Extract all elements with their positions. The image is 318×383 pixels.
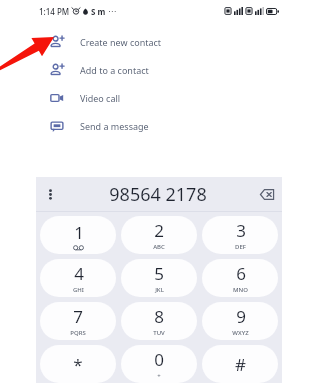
staticText: Create new contact xyxy=(80,36,162,48)
button[interactable]: Backspace xyxy=(257,184,277,204)
staticText: MNO xyxy=(233,286,248,294)
staticText: + xyxy=(157,372,161,380)
staticText: Send a message xyxy=(80,120,149,132)
staticText: 1:14 PM xyxy=(39,6,70,17)
button[interactable]: 8 xyxy=(121,302,197,340)
staticText: Add to a contact xyxy=(80,64,149,76)
button[interactable]: Add to a contact xyxy=(36,56,282,84)
staticText: 1 xyxy=(74,221,84,244)
staticText: 6 xyxy=(236,262,246,285)
staticText: 4 xyxy=(74,262,84,285)
staticText: DEF xyxy=(235,243,246,251)
staticText: GHI xyxy=(73,286,84,294)
staticText: 2 xyxy=(154,219,164,242)
button[interactable]: 5 xyxy=(121,259,197,297)
staticText: 5 xyxy=(154,262,164,285)
staticText: ABC xyxy=(153,243,165,251)
staticText: Video call xyxy=(80,92,121,104)
button[interactable]: 9 xyxy=(202,302,278,340)
staticText: # xyxy=(235,353,246,376)
staticText: 7 xyxy=(73,305,83,328)
staticText: 0 xyxy=(154,348,164,371)
staticText: 8 xyxy=(154,305,164,328)
button[interactable]: Send a message xyxy=(36,112,282,140)
button[interactable]: More options xyxy=(41,185,59,203)
button[interactable]: # xyxy=(202,345,278,383)
button[interactable]: 1 xyxy=(40,216,116,254)
staticText: 9 xyxy=(236,305,246,328)
staticText: ⋯ xyxy=(108,7,116,16)
staticText: S m xyxy=(91,6,106,17)
button[interactable]: 6 xyxy=(202,259,278,297)
staticText: 98564 2178 xyxy=(109,182,207,207)
staticText: WXYZ xyxy=(232,329,249,337)
button[interactable]: Video call xyxy=(36,84,282,112)
staticText: PQRS xyxy=(70,329,86,337)
button[interactable]: 4 xyxy=(40,259,116,297)
button[interactable]: 3 xyxy=(202,216,278,254)
button[interactable]: 7 xyxy=(40,302,116,340)
button[interactable]: Create new contact xyxy=(36,28,282,56)
button[interactable]: 0 xyxy=(121,345,197,383)
staticText: 3 xyxy=(236,219,246,242)
staticText: TUV xyxy=(153,329,165,337)
button[interactable]: * xyxy=(40,345,116,383)
staticText: * xyxy=(73,353,83,376)
staticText: JKL xyxy=(155,286,164,294)
button[interactable]: 2 xyxy=(121,216,197,254)
